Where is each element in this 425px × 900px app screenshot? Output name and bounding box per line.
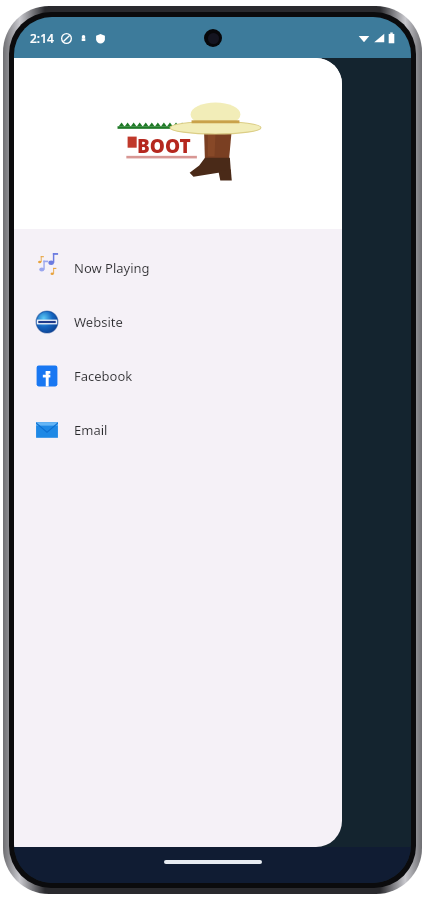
staticText: Website xyxy=(74,313,123,331)
button[interactable]: Facebook xyxy=(14,359,342,393)
staticText: 2:14 xyxy=(30,30,54,46)
staticText: Facebook xyxy=(74,367,133,385)
button[interactable]: Email xyxy=(14,413,342,447)
staticText: BOOT xyxy=(137,133,191,159)
button[interactable]: Now Playing xyxy=(14,251,342,285)
staticText: Now Playing xyxy=(74,259,150,277)
button[interactable]: Website xyxy=(14,305,342,339)
staticText: Email xyxy=(74,421,108,439)
